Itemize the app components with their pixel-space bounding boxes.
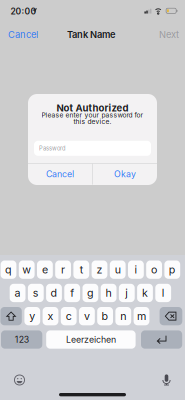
staticText: v	[84, 310, 90, 323]
button[interactable]: i	[128, 260, 144, 279]
button[interactable]: Shift	[0, 307, 22, 325]
staticText: g	[87, 286, 94, 299]
staticText: a	[15, 286, 21, 299]
button[interactable]: c	[61, 307, 77, 325]
staticText: c	[66, 310, 72, 323]
button[interactable]: v	[79, 307, 95, 325]
button[interactable]: w	[19, 260, 35, 279]
staticText: x	[47, 310, 53, 323]
button[interactable]: Leerzeichen	[46, 330, 136, 349]
staticText: t	[80, 263, 83, 276]
button[interactable]: g	[82, 284, 98, 302]
button[interactable]: 123	[1, 330, 42, 349]
staticText: d	[50, 286, 57, 299]
staticText: Cancel	[46, 169, 74, 179]
button[interactable]: p	[164, 260, 180, 279]
staticText: 123	[15, 334, 29, 345]
staticText: Not Authorized	[56, 102, 128, 114]
button[interactable]: t	[73, 260, 89, 279]
button[interactable]: x	[43, 307, 58, 325]
button[interactable]: k	[137, 284, 153, 302]
button[interactable]: o	[146, 260, 162, 279]
staticText: n	[120, 310, 126, 323]
staticText: m	[137, 310, 146, 323]
button[interactable]: z	[92, 260, 107, 279]
staticText: 20:00	[10, 6, 36, 16]
button[interactable]: Emoji	[10, 371, 28, 389]
button[interactable]: y	[24, 307, 40, 325]
staticText: h	[106, 286, 112, 299]
button[interactable]: h	[101, 284, 116, 302]
staticText: q	[5, 263, 12, 276]
staticText: y	[29, 310, 35, 323]
button[interactable]: q	[1, 260, 16, 279]
staticText: e	[42, 263, 48, 276]
staticText: p	[169, 263, 176, 276]
staticText: l	[162, 286, 165, 299]
button[interactable]: a	[10, 284, 25, 302]
staticText: Password	[39, 145, 66, 152]
button[interactable]: Cancel	[28, 164, 92, 185]
button[interactable]: e	[37, 260, 53, 279]
staticText: r	[61, 263, 65, 276]
staticText: z	[96, 263, 102, 276]
button[interactable]: Cancel	[8, 29, 38, 40]
button[interactable]: Next	[159, 29, 179, 40]
button[interactable]: Delete	[160, 307, 182, 325]
button[interactable]: j	[119, 284, 135, 302]
button[interactable]: Dictation	[157, 371, 175, 389]
button[interactable]: s	[28, 284, 44, 302]
staticText: this device.	[73, 117, 111, 126]
staticText: Tank Name	[67, 29, 116, 40]
staticText: k	[142, 286, 148, 299]
staticText: Cancel	[8, 29, 38, 40]
button[interactable]: l	[155, 284, 171, 302]
button[interactable]: d	[46, 284, 62, 302]
button[interactable]: r	[55, 260, 71, 279]
staticText: i	[134, 263, 137, 276]
button[interactable]: m	[134, 307, 149, 325]
button[interactable]: f	[64, 284, 80, 302]
staticText: Next	[159, 29, 179, 40]
button[interactable]: b	[97, 307, 113, 325]
button[interactable]: u	[110, 260, 126, 279]
staticText: o	[151, 263, 157, 276]
staticText: b	[102, 310, 109, 323]
staticText: j	[125, 286, 128, 299]
button[interactable]: n	[115, 307, 131, 325]
staticText: Okay	[114, 169, 136, 179]
staticText: u	[115, 263, 121, 276]
button[interactable]: Okay	[93, 164, 157, 185]
staticText: Leerzeichen	[66, 334, 116, 345]
staticText: w	[22, 263, 31, 276]
staticText: Please enter your password for	[41, 111, 143, 119]
button[interactable]: Return	[141, 330, 182, 349]
staticText: s	[33, 286, 39, 299]
staticText: f	[70, 286, 74, 299]
